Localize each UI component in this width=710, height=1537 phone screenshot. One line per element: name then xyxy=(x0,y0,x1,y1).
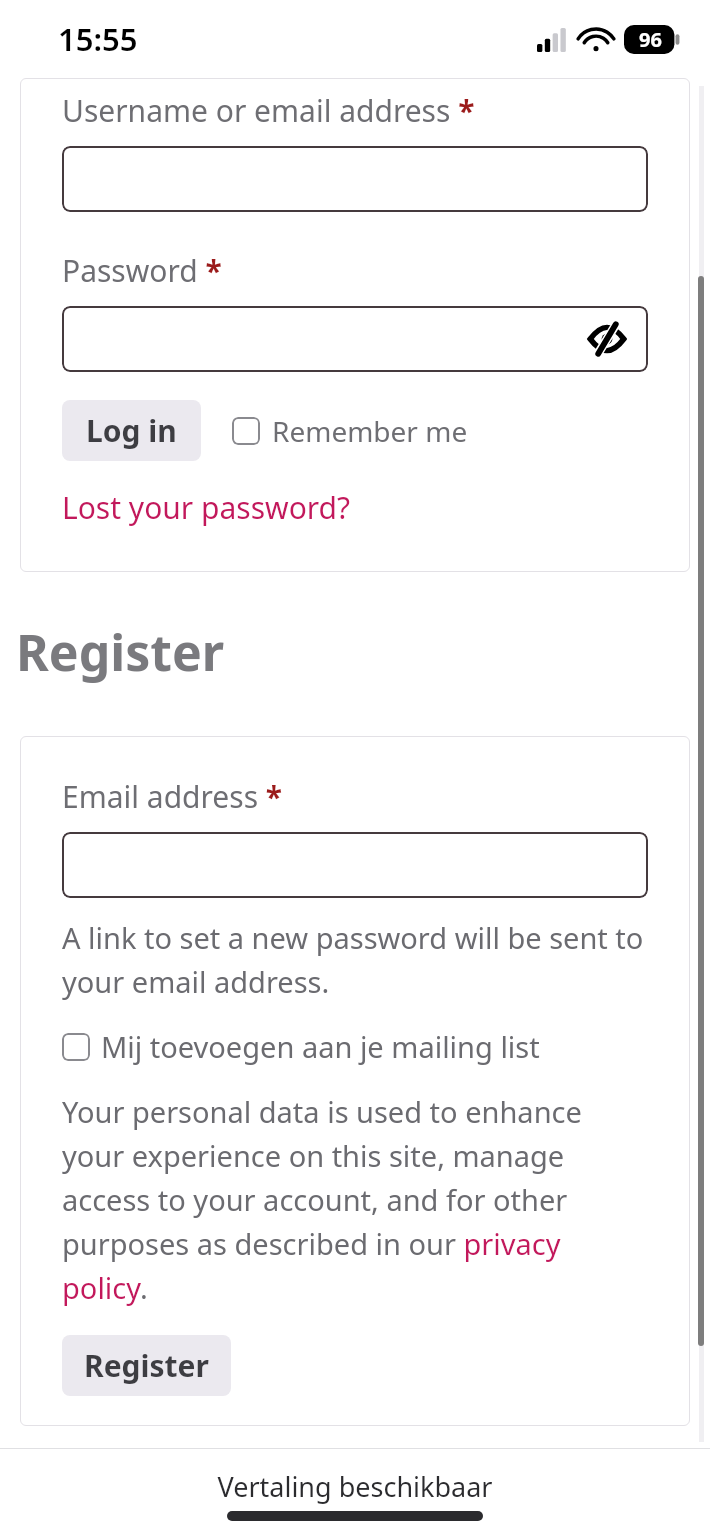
button[interactable]: Show password xyxy=(62,306,648,372)
staticText: Mij toevoegen aan je mailing list xyxy=(101,1027,540,1066)
staticText: 15:55 xyxy=(58,18,138,60)
button[interactable] xyxy=(62,832,648,898)
button[interactable]: Show password xyxy=(586,318,628,360)
staticText: Register xyxy=(84,1345,209,1386)
staticText: Register xyxy=(16,618,225,686)
staticText: 96 xyxy=(639,26,662,53)
staticText: Your personal data is used to enhance yo… xyxy=(62,1092,648,1307)
button[interactable]: Register xyxy=(62,1335,231,1396)
button[interactable] xyxy=(62,146,648,212)
staticText: Log in xyxy=(86,410,177,451)
staticText: Password * xyxy=(62,250,222,291)
button[interactable]: Mij toevoegen aan je mailing list xyxy=(62,1027,540,1066)
staticText: A link to set a new password will be sen… xyxy=(62,918,648,1001)
button[interactable]: Lost your password? xyxy=(62,487,351,528)
staticText: Remember me xyxy=(272,412,468,450)
button[interactable]: Vertaling beschikbaar xyxy=(217,1468,493,1505)
staticText: Username or email address * xyxy=(62,90,475,131)
staticText: Email address * xyxy=(62,776,283,817)
button[interactable]: Remember me xyxy=(232,412,468,450)
button[interactable]: Log in xyxy=(62,400,201,461)
